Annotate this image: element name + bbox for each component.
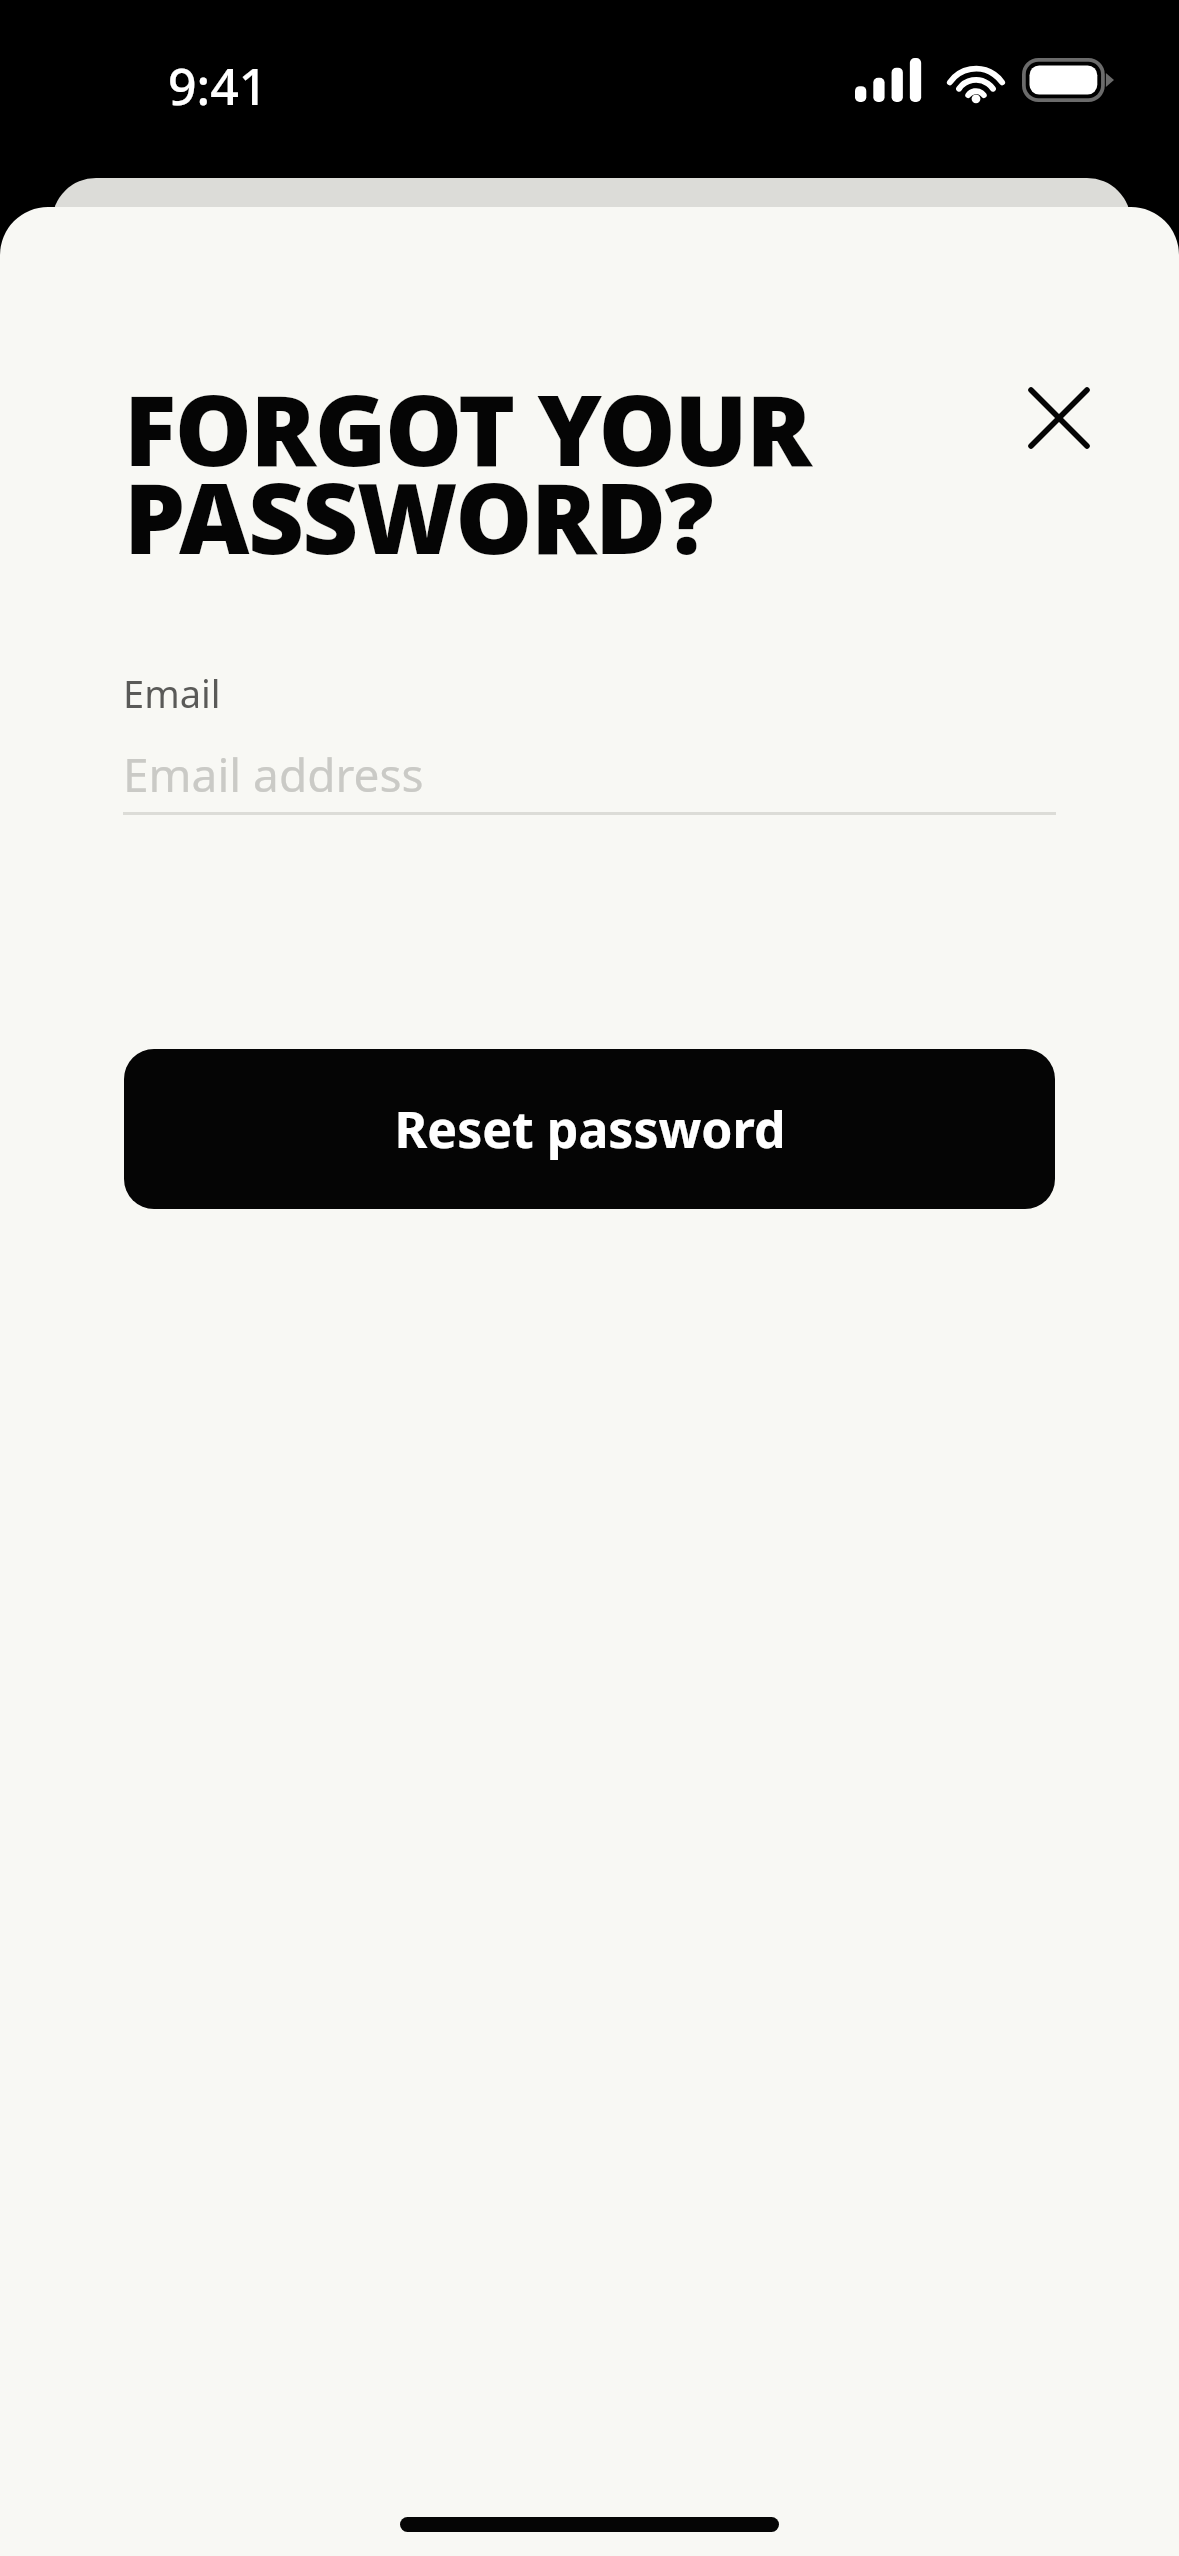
staticText: Reset password [394, 1095, 786, 1163]
staticText: 9:41 [168, 52, 268, 120]
staticText: Email address [123, 743, 424, 795]
button[interactable]: Close [1011, 370, 1107, 466]
button[interactable]: Email address [123, 743, 1056, 795]
button[interactable]: Reset password [124, 1049, 1055, 1209]
staticText: Email [123, 667, 221, 719]
staticText: FORGOT YOUR PASSWORD? [124, 362, 1011, 582]
